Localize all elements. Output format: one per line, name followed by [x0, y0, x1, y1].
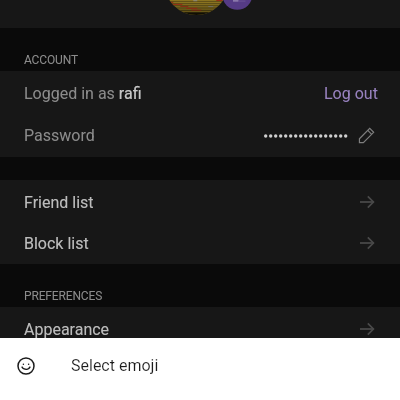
- staticText: ACCOUNT: [24, 53, 78, 67]
- button[interactable]: Appearance: [0, 307, 400, 351]
- button[interactable]: Logged in as rafi: [0, 71, 400, 114]
- button[interactable]: Password: [0, 114, 400, 157]
- staticText: Log out: [324, 84, 378, 103]
- staticText: PREFERENCES: [24, 289, 103, 303]
- staticText: Select emoji: [71, 356, 159, 375]
- staticText: Logged in as rafi: [24, 84, 142, 103]
- button[interactable]: Select emoji: [0, 338, 400, 400]
- button[interactable]: Friend list: [0, 180, 400, 222]
- button[interactable]: Log out: [324, 84, 378, 103]
- staticText: Block list: [24, 234, 89, 253]
- staticText: Appearance: [24, 320, 110, 339]
- staticText: Password: [24, 126, 95, 145]
- staticText: Friend list: [24, 193, 94, 212]
- other: Edit password: [358, 127, 375, 144]
- button[interactable]: Block list: [0, 222, 400, 264]
